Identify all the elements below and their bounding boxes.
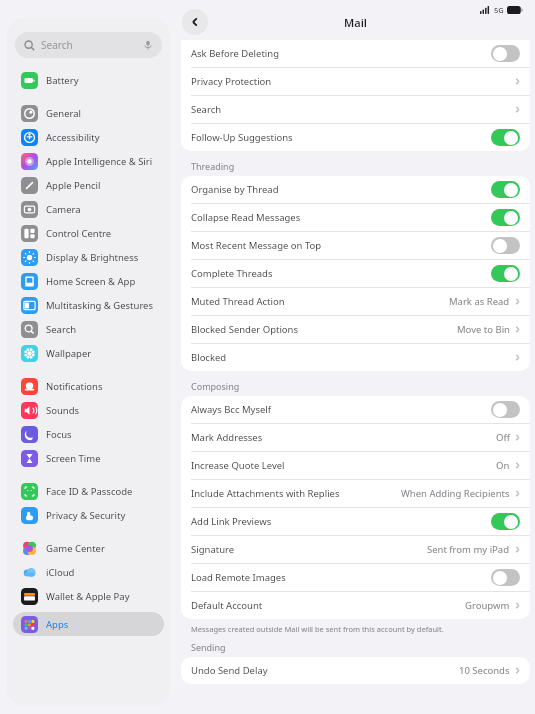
staticText: Sent from my iPad: [427, 543, 510, 556]
staticText: Follow-Up Suggestions: [191, 131, 293, 144]
staticText: Most Recent Message on Top: [191, 239, 322, 252]
button[interactable]: Apps: [13, 612, 164, 636]
button[interactable]: On: [491, 209, 520, 226]
staticText: Collapse Read Messages: [191, 211, 301, 224]
staticText: Mark as Read: [449, 295, 510, 308]
staticText: 10 Seconds: [459, 664, 510, 677]
button[interactable]: Accessibility: [13, 125, 164, 149]
staticText: Complete Threads: [191, 267, 273, 280]
staticText: Camera: [46, 203, 81, 216]
button[interactable]: Off: [491, 401, 520, 418]
button[interactable]: Camera: [13, 197, 164, 221]
staticText: Off: [496, 431, 510, 444]
staticText: Messages created outside Mail will be se…: [191, 624, 444, 634]
staticText: Game Center: [46, 542, 105, 555]
button[interactable]: Include Attachments with Replies: [181, 480, 530, 507]
button[interactable]: Blocked: [181, 344, 530, 371]
staticText: Privacy Protection: [191, 75, 272, 88]
button[interactable]: Search: [15, 32, 162, 58]
staticText: Blocked: [191, 351, 227, 364]
button[interactable]: Face ID & Passcode: [13, 479, 164, 503]
button[interactable]: Control Centre: [13, 221, 164, 245]
button[interactable]: On: [491, 265, 520, 282]
staticText: Always Bcc Myself: [191, 403, 272, 416]
button[interactable]: Ask Before Deleting: [181, 40, 530, 67]
button[interactable]: Privacy Protection: [181, 68, 530, 95]
button[interactable]: Muted Thread Action: [181, 288, 530, 315]
staticText: Control Centre: [46, 227, 112, 240]
button[interactable]: Wallet & Apple Pay: [13, 584, 164, 608]
button[interactable]: Signature: [181, 536, 530, 563]
staticText: Screen Time: [46, 452, 101, 465]
staticText: Display & Brightness: [46, 251, 139, 264]
staticText: Search: [41, 38, 73, 52]
button[interactable]: Blocked Sender Options: [181, 316, 530, 343]
staticText: Move to Bin: [457, 323, 510, 336]
staticText: Undo Send Delay: [191, 664, 268, 677]
button[interactable]: Apple Intelligence & Siri: [13, 149, 164, 173]
button[interactable]: Battery: [13, 68, 164, 92]
button[interactable]: Load Remote Images: [181, 564, 530, 591]
button[interactable]: Off: [491, 237, 520, 254]
staticText: Sending: [191, 641, 226, 653]
button[interactable]: Back: [182, 9, 208, 35]
button[interactable]: Complete Threads: [181, 260, 530, 287]
button[interactable]: Default Account: [181, 592, 530, 619]
staticText: Privacy & Security: [46, 509, 126, 522]
button[interactable]: Off: [491, 569, 520, 586]
button[interactable]: General: [13, 101, 164, 125]
staticText: Wallet & Apple Pay: [46, 590, 130, 603]
button[interactable]: iCloud: [13, 560, 164, 584]
button[interactable]: Wallpaper: [13, 341, 164, 365]
button[interactable]: Add Link Previews: [181, 508, 530, 535]
staticText: General: [46, 107, 82, 120]
staticText: Ask Before Deleting: [191, 47, 279, 60]
button[interactable]: Game Center: [13, 536, 164, 560]
button[interactable]: Display & Brightness: [13, 245, 164, 269]
staticText: When Adding Recipients: [401, 487, 510, 500]
staticText: Apps: [46, 618, 69, 631]
button[interactable]: Mark Addresses: [181, 424, 530, 451]
button[interactable]: Screen Time: [13, 446, 164, 470]
staticText: Search: [191, 103, 222, 116]
staticText: iCloud: [46, 566, 75, 579]
staticText: Accessibility: [46, 131, 100, 144]
staticText: Apple Pencil: [46, 179, 101, 192]
button[interactable]: Undo Send Delay: [181, 657, 530, 684]
button[interactable]: Collapse Read Messages: [181, 204, 530, 231]
staticText: Organise by Thread: [191, 183, 279, 196]
staticText: Apple Intelligence & Siri: [46, 155, 153, 168]
staticText: Face ID & Passcode: [46, 485, 133, 498]
staticText: Battery: [46, 74, 79, 87]
button[interactable]: Sounds: [13, 398, 164, 422]
button[interactable]: On: [491, 513, 520, 530]
button[interactable]: Apple Pencil: [13, 173, 164, 197]
button[interactable]: Always Bcc Myself: [181, 396, 530, 423]
button[interactable]: Focus: [13, 422, 164, 446]
staticText: On: [496, 459, 510, 472]
button[interactable]: Search: [181, 96, 530, 123]
staticText: Default Account: [191, 599, 263, 612]
button[interactable]: On: [491, 129, 520, 146]
button[interactable]: Privacy & Security: [13, 503, 164, 527]
button[interactable]: Search: [13, 317, 164, 341]
staticText: Focus: [46, 428, 72, 441]
staticText: Home Screen & App Library: [46, 275, 158, 288]
button[interactable]: Home Screen & App Library: [13, 269, 164, 293]
button[interactable]: Increase Quote Level: [181, 452, 530, 479]
staticText: Increase Quote Level: [191, 459, 285, 472]
button[interactable]: Multitasking & Gestures: [13, 293, 164, 317]
staticText: Mark Addresses: [191, 431, 263, 444]
button[interactable]: On: [491, 181, 520, 198]
staticText: Composing: [191, 380, 240, 392]
staticText: Blocked Sender Options: [191, 323, 299, 336]
staticText: Signature: [191, 543, 235, 556]
button[interactable]: Off: [491, 45, 520, 62]
staticText: Multitasking & Gestures: [46, 299, 154, 312]
staticText: Search: [46, 323, 77, 336]
button[interactable]: Most Recent Message on Top: [181, 232, 530, 259]
button[interactable]: Notifications: [13, 374, 164, 398]
button[interactable]: Follow-Up Suggestions: [181, 124, 530, 151]
staticText: Include Attachments with Replies: [191, 487, 340, 500]
button[interactable]: Organise by Thread: [181, 176, 530, 203]
